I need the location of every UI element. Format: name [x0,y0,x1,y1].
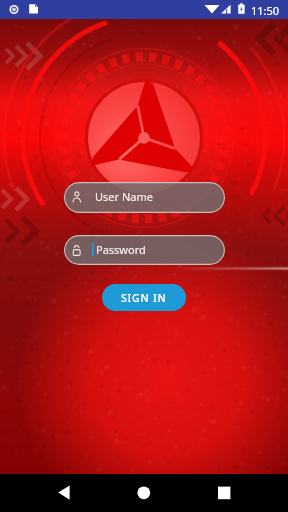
staticText: Password [96,242,146,257]
button[interactable]: Password [64,235,225,265]
staticText: SIGN IN [121,291,167,305]
button[interactable]: SIGN IN [102,284,186,311]
staticText: User Name [95,189,153,204]
staticText: 11:50 [251,3,280,18]
button[interactable]: User Name [64,182,225,213]
button[interactable]: Back [44,474,84,512]
button[interactable]: Recent apps [204,474,244,512]
button[interactable]: Home [124,474,164,512]
